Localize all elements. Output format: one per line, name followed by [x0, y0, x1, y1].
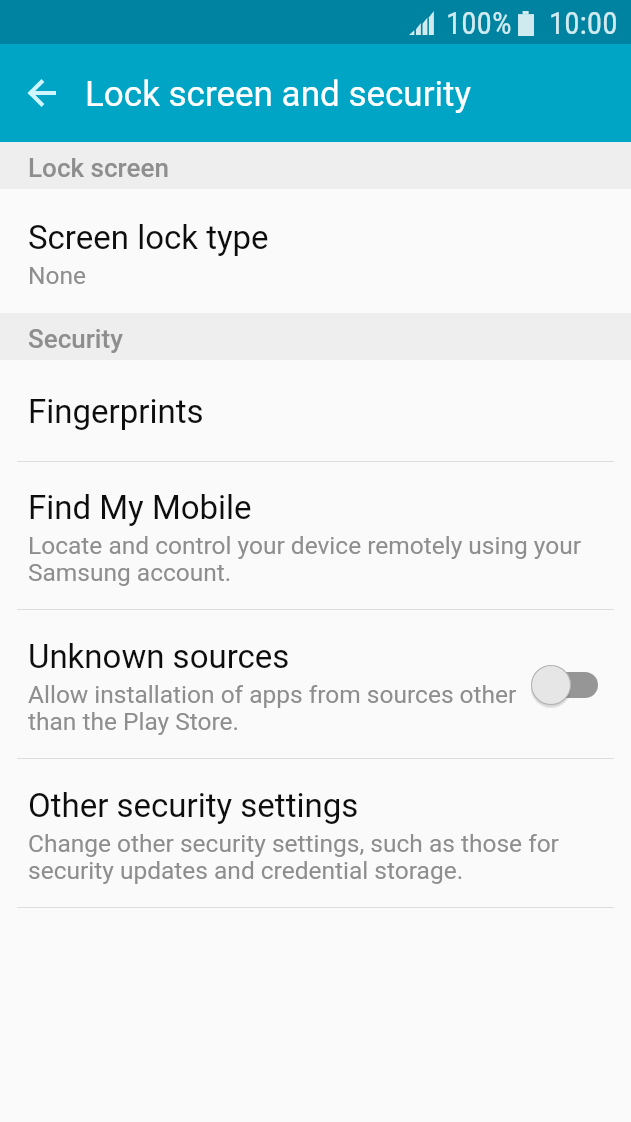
button[interactable]: Unknown sources toggle	[530, 660, 610, 710]
staticText: Locate and control your device remotely …	[28, 531, 601, 587]
staticText: Other security settings	[28, 786, 359, 825]
staticText: 10:00	[549, 5, 618, 41]
staticText: Screen lock type	[28, 218, 269, 257]
staticText: Change other security settings, such as …	[28, 829, 601, 885]
staticText: Lock screen and security	[85, 74, 472, 115]
staticText: Unknown sources	[28, 637, 290, 676]
button[interactable]: Navigate up	[0, 44, 84, 142]
staticText: 100%	[446, 5, 512, 41]
button[interactable]: Fingerprints	[0, 360, 631, 462]
button[interactable]: Find My Mobile	[0, 462, 631, 610]
staticText: Fingerprints	[28, 392, 204, 431]
staticText: Lock screen	[28, 153, 169, 183]
button[interactable]: Unknown sources	[0, 610, 631, 759]
staticText: None	[28, 261, 86, 290]
button[interactable]: Other security settings	[0, 759, 631, 908]
button[interactable]: Screen lock type	[0, 189, 631, 313]
staticText: Security	[28, 324, 123, 354]
staticText: Find My Mobile	[28, 488, 252, 527]
staticText: Allow installation of apps from sources …	[28, 680, 521, 736]
